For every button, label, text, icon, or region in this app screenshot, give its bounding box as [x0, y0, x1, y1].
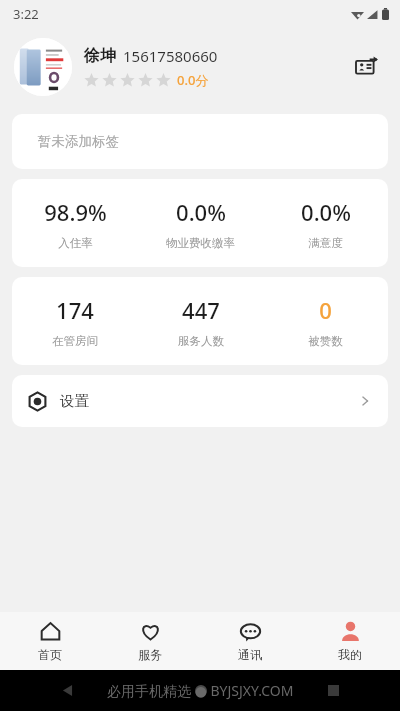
button[interactable]: 通讯 [200, 612, 300, 670]
staticText: 首页 [38, 647, 62, 662]
button[interactable]: 447 [138, 277, 263, 365]
staticText: 0.0% [176, 197, 226, 227]
button[interactable]: 0.0% [263, 179, 388, 267]
staticText: 0 [319, 295, 332, 325]
staticText: 在管房间 [52, 334, 98, 348]
button[interactable]: 0.0% [138, 179, 263, 267]
button[interactable]: 服务 [100, 612, 200, 670]
staticText: 设置 [60, 392, 89, 410]
staticText: 0.0% [301, 197, 351, 227]
button[interactable]: Share contact card [350, 50, 384, 84]
staticText: 必用手机精选 ● BYJSJXY.COM [107, 681, 294, 700]
staticText: 服务 [138, 647, 162, 662]
staticText: 98.9% [44, 197, 107, 227]
staticText: 447 [182, 295, 220, 325]
staticText: 被赞数 [308, 334, 343, 348]
staticText: 物业费收缴率 [166, 236, 235, 250]
button[interactable]: 98.9% [12, 179, 138, 267]
button[interactable]: 设置 [12, 375, 388, 427]
button[interactable]: 0 [263, 277, 388, 365]
staticText: 服务人数 [178, 334, 224, 348]
staticText: 0.0分 [177, 71, 209, 89]
staticText: 暂未添加标签 [38, 133, 119, 150]
button[interactable]: 174 [12, 277, 138, 365]
button[interactable]: 首页 [0, 612, 100, 670]
staticText: 满意度 [308, 236, 343, 250]
staticText: 174 [56, 295, 94, 325]
staticText: 通讯 [238, 647, 262, 662]
button[interactable]: 我的 [300, 612, 400, 670]
button[interactable]: 徐坤 [0, 28, 400, 106]
staticText: 入住率 [58, 236, 93, 250]
staticText: 徐坤 [84, 46, 116, 66]
button[interactable]: 暂未添加标签 [12, 114, 388, 169]
staticText: 我的 [338, 647, 362, 662]
staticText: 3:22 [13, 5, 39, 23]
staticText: 15617580660 [123, 46, 218, 66]
